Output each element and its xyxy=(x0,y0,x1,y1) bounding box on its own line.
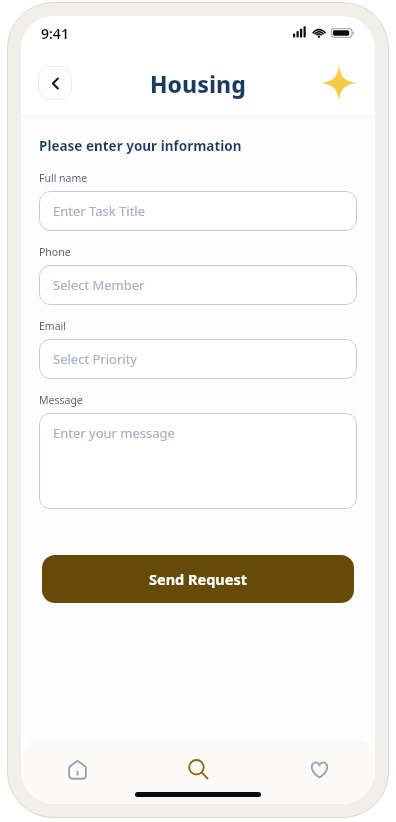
button[interactable]: Favorites xyxy=(293,752,345,786)
button[interactable]: Enter Task Title xyxy=(39,191,357,231)
button[interactable]: Back xyxy=(38,66,72,100)
staticText: Phone xyxy=(39,245,71,259)
staticText: Housing xyxy=(150,68,246,99)
staticText: Select Priority xyxy=(53,350,137,368)
staticText: Email xyxy=(39,319,66,333)
staticText: Select Member xyxy=(53,276,145,294)
button[interactable]: Home xyxy=(51,752,103,786)
staticText: Please enter your information xyxy=(39,137,242,155)
button[interactable]: Select Priority xyxy=(39,339,357,379)
staticText: Message xyxy=(39,393,83,407)
button[interactable]: Enter your message xyxy=(39,413,357,509)
button[interactable]: Search xyxy=(172,752,224,786)
button[interactable]: Magic xyxy=(319,63,359,103)
button[interactable]: Send Request xyxy=(42,555,354,603)
staticText: Enter your message xyxy=(53,424,175,442)
staticText: Enter Task Title xyxy=(53,202,146,220)
staticText: 9:41 xyxy=(41,24,69,43)
staticText: Full name xyxy=(39,171,88,185)
button[interactable]: Select Member xyxy=(39,265,357,305)
staticText: Send Request xyxy=(149,569,247,589)
